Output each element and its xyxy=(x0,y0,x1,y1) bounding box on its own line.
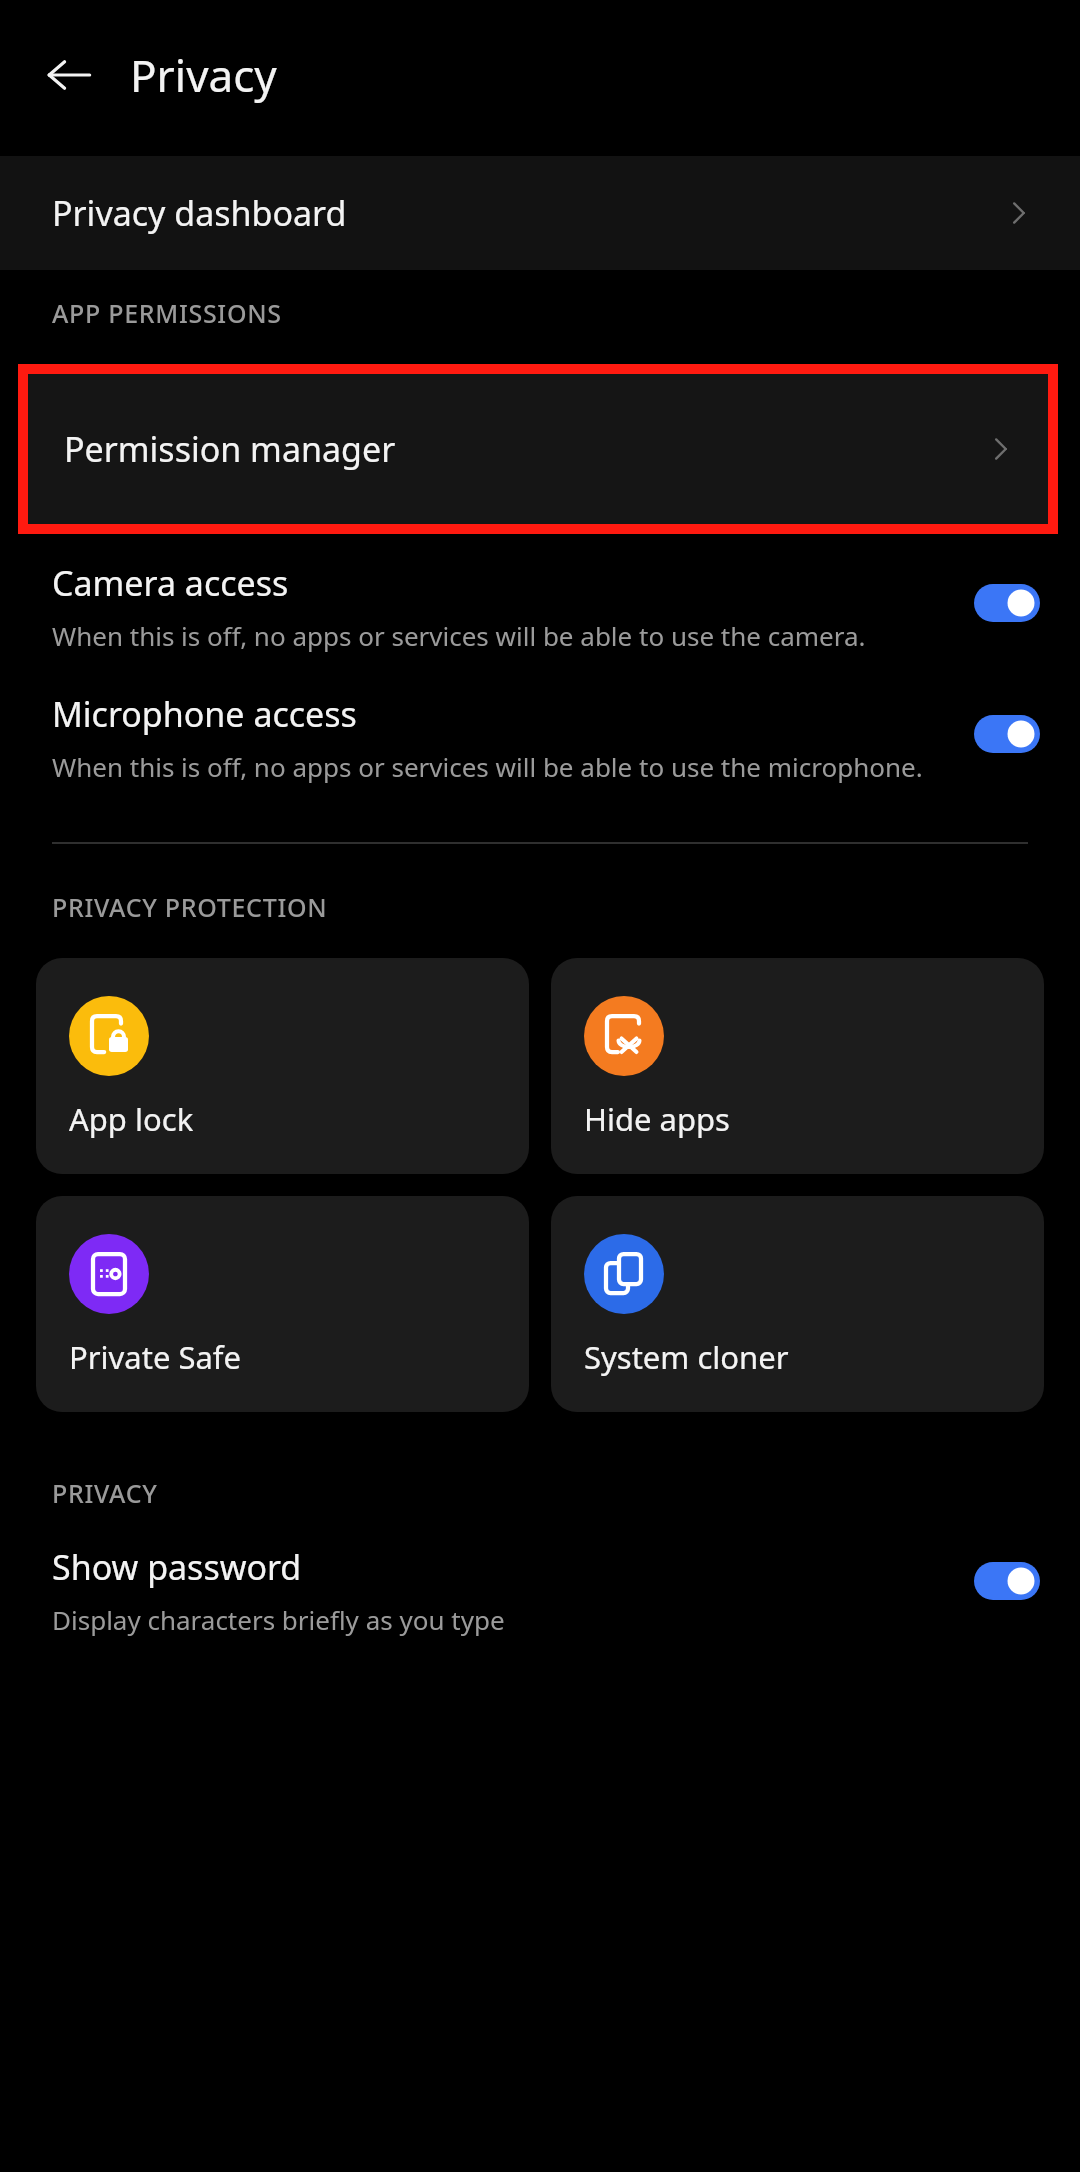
staticText: Microphone access xyxy=(52,691,357,737)
staticText: APP PERMISSIONS xyxy=(52,296,282,330)
button[interactable]: Back xyxy=(30,36,108,114)
staticText: Camera access xyxy=(52,560,289,606)
staticText: Privacy xyxy=(130,45,277,105)
staticText: When this is off, no apps or services wi… xyxy=(52,749,923,784)
staticText: PRIVACY xyxy=(52,1476,158,1510)
staticText: PRIVACY PROTECTION xyxy=(52,890,328,924)
button[interactable]: Camera access xyxy=(0,534,1080,653)
staticText: When this is off, no apps or services wi… xyxy=(52,618,866,653)
button[interactable]: System cloner xyxy=(551,1196,1044,1412)
staticText: App lock xyxy=(69,1098,194,1140)
staticText: Privacy dashboard xyxy=(52,190,1002,236)
button[interactable]: Privacy dashboard xyxy=(0,156,1080,270)
staticText: Show password xyxy=(52,1544,302,1590)
staticText: Permission manager xyxy=(64,426,984,472)
button[interactable]: Hide apps xyxy=(551,958,1044,1174)
button[interactable]: Microphone access xyxy=(0,653,1080,784)
staticText: Private Safe xyxy=(69,1336,241,1378)
button[interactable]: Show password xyxy=(0,1544,1080,1637)
button[interactable]: Private Safe xyxy=(36,1196,529,1412)
button[interactable]: Permission manager xyxy=(28,374,1048,524)
button[interactable]: App lock xyxy=(36,958,529,1174)
staticText: Hide apps xyxy=(584,1098,730,1140)
staticText: Display characters briefly as you type xyxy=(52,1602,505,1637)
staticText: System cloner xyxy=(584,1336,789,1378)
